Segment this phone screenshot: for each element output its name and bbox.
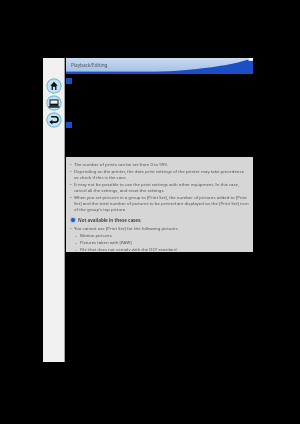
staticText: – [75,246,78,251]
staticText: • [70,225,72,231]
staticText: The number of prints can be set from 0 t… [74,161,168,167]
staticText: Depending on the printer, the date print… [74,168,249,180]
staticText: When you set pictures in a group to [Pri… [74,194,249,212]
button[interactable]: Back [46,112,62,128]
button[interactable]: Playback/Editing [66,58,253,74]
staticText: Motion pictures [80,232,112,238]
staticText: Not available in these cases: [78,217,142,223]
staticText: – [75,232,78,238]
staticText: You cannot use [Print Set] for the follo… [74,225,179,231]
staticText: • [70,194,72,200]
staticText: Pictures taken with [RAW] [80,239,132,245]
staticText: – [75,239,78,245]
staticText: File that does not comply with the DCF s… [80,246,177,251]
staticText: • [70,161,72,167]
staticText: Playback/Editing [71,62,108,68]
staticText: • [70,181,72,187]
button[interactable]: Contents [46,95,62,111]
staticText: • [70,168,72,174]
staticText: It may not be possible to use the print … [74,181,249,193]
button[interactable]: Home [46,78,62,94]
